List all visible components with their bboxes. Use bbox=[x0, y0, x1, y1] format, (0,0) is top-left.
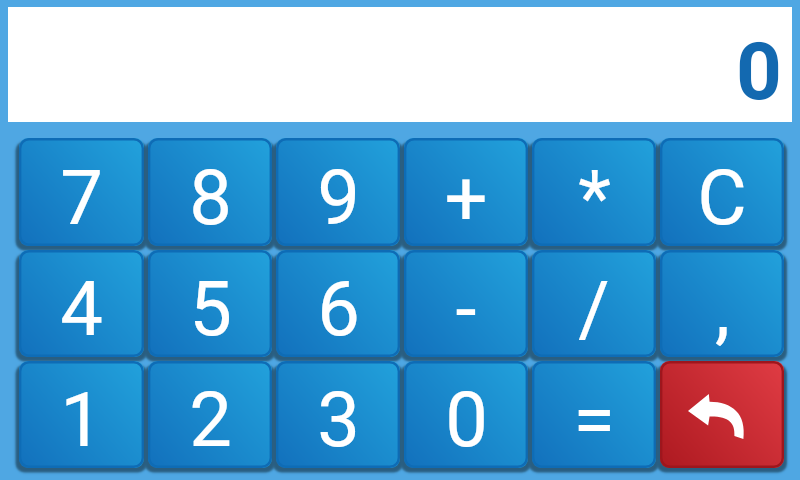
button[interactable]: 5 bbox=[148, 250, 276, 361]
button[interactable]: 4 bbox=[19, 250, 148, 361]
staticText: + bbox=[444, 153, 488, 242]
staticText: - bbox=[455, 264, 477, 353]
button[interactable]: 8 bbox=[148, 138, 276, 250]
staticText: 8 bbox=[189, 153, 232, 242]
button[interactable]: 9 bbox=[276, 138, 404, 250]
staticText: C bbox=[697, 153, 747, 242]
staticText: 9 bbox=[317, 153, 360, 242]
button[interactable]: 0 bbox=[404, 361, 532, 472]
button[interactable]: = bbox=[532, 361, 660, 472]
staticText: 6 bbox=[317, 264, 360, 353]
staticText: 0 bbox=[445, 375, 488, 464]
staticText: 1 bbox=[60, 375, 103, 464]
staticText: 5 bbox=[189, 264, 232, 353]
button[interactable]: 6 bbox=[276, 250, 404, 361]
button[interactable]: C bbox=[660, 138, 788, 250]
button[interactable]: , bbox=[660, 250, 788, 361]
button[interactable]: 7 bbox=[19, 138, 148, 250]
staticText: 2 bbox=[189, 375, 232, 464]
staticText: 7 bbox=[60, 153, 103, 242]
button[interactable]: 1 bbox=[19, 361, 148, 472]
staticText: 0 bbox=[736, 25, 782, 119]
staticText: / bbox=[578, 264, 610, 353]
button[interactable]: * bbox=[532, 138, 660, 250]
staticText: * bbox=[578, 153, 611, 242]
button[interactable]: 0 bbox=[8, 7, 792, 122]
button[interactable]: / bbox=[532, 250, 660, 361]
staticText: = bbox=[573, 375, 615, 464]
button[interactable]: + bbox=[404, 138, 532, 250]
staticText: 4 bbox=[60, 264, 103, 353]
staticText: , bbox=[715, 264, 730, 353]
button[interactable]: 2 bbox=[148, 361, 276, 472]
staticText: 3 bbox=[317, 375, 360, 464]
button[interactable]: - bbox=[404, 250, 532, 361]
button[interactable]: 3 bbox=[276, 361, 404, 472]
button[interactable]: Backspace bbox=[660, 361, 788, 472]
